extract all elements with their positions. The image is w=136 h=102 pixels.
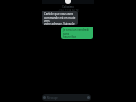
staticText: L'article que vous avez commande est en …: [44, 12, 77, 25]
staticText: Je serai un vendredi sans heure fixe: [63, 28, 92, 38]
button[interactable]: Message: [42, 94, 91, 101]
staticText: +33 6 12 34 56 78: [57, 9, 79, 13]
staticText: Colissimo: [62, 5, 74, 9]
button[interactable]: Profile photo: [65, 0, 71, 4]
button[interactable]: Je serai un vendredi sans heure fixe: [61, 27, 93, 39]
staticText: Message: [47, 96, 58, 100]
button[interactable]: L'article que vous avez commande est en …: [42, 11, 78, 25]
